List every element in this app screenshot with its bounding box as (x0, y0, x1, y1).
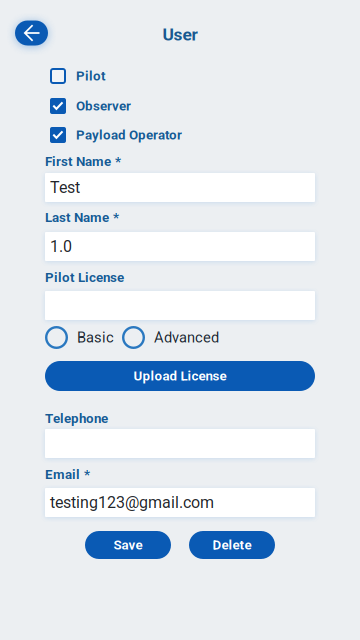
button[interactable]: Back (15, 20, 48, 45)
staticText: Last Name (45, 210, 109, 225)
button[interactable]: Save (85, 531, 171, 559)
staticText: * (115, 154, 121, 169)
staticText: Basic (77, 329, 114, 346)
staticText: Upload License (133, 368, 226, 384)
staticText: User (162, 24, 197, 45)
button[interactable]: Upload License (45, 361, 315, 391)
button[interactable]: Basic (45, 325, 114, 350)
staticText: 1.0 (50, 237, 72, 256)
staticText: Payload Operator (76, 127, 182, 143)
staticText: First Name (45, 154, 111, 169)
button[interactable]: Delete (189, 531, 275, 559)
staticText: Pilot License (45, 270, 124, 285)
staticText: Advanced (154, 329, 219, 346)
staticText: Save (113, 537, 142, 553)
button[interactable]: Observer (45, 98, 315, 114)
button[interactable]: Advanced (122, 325, 219, 350)
button[interactable]: testing123@gmail.com (45, 488, 315, 517)
staticText: Test (50, 178, 80, 197)
staticText: Telephone (45, 411, 108, 426)
staticText: Pilot (76, 68, 106, 84)
staticText: testing123@gmail.com (50, 493, 214, 512)
button[interactable]: Pilot (45, 68, 315, 84)
staticText: * (113, 210, 119, 225)
staticText: Email (45, 467, 80, 482)
button[interactable]: 1.0 (45, 232, 315, 261)
staticText: Delete (212, 537, 251, 553)
staticText: Observer (76, 98, 131, 114)
button[interactable]: Payload Operator (45, 127, 315, 143)
staticText: * (84, 467, 90, 482)
button[interactable]: Test (45, 173, 315, 202)
